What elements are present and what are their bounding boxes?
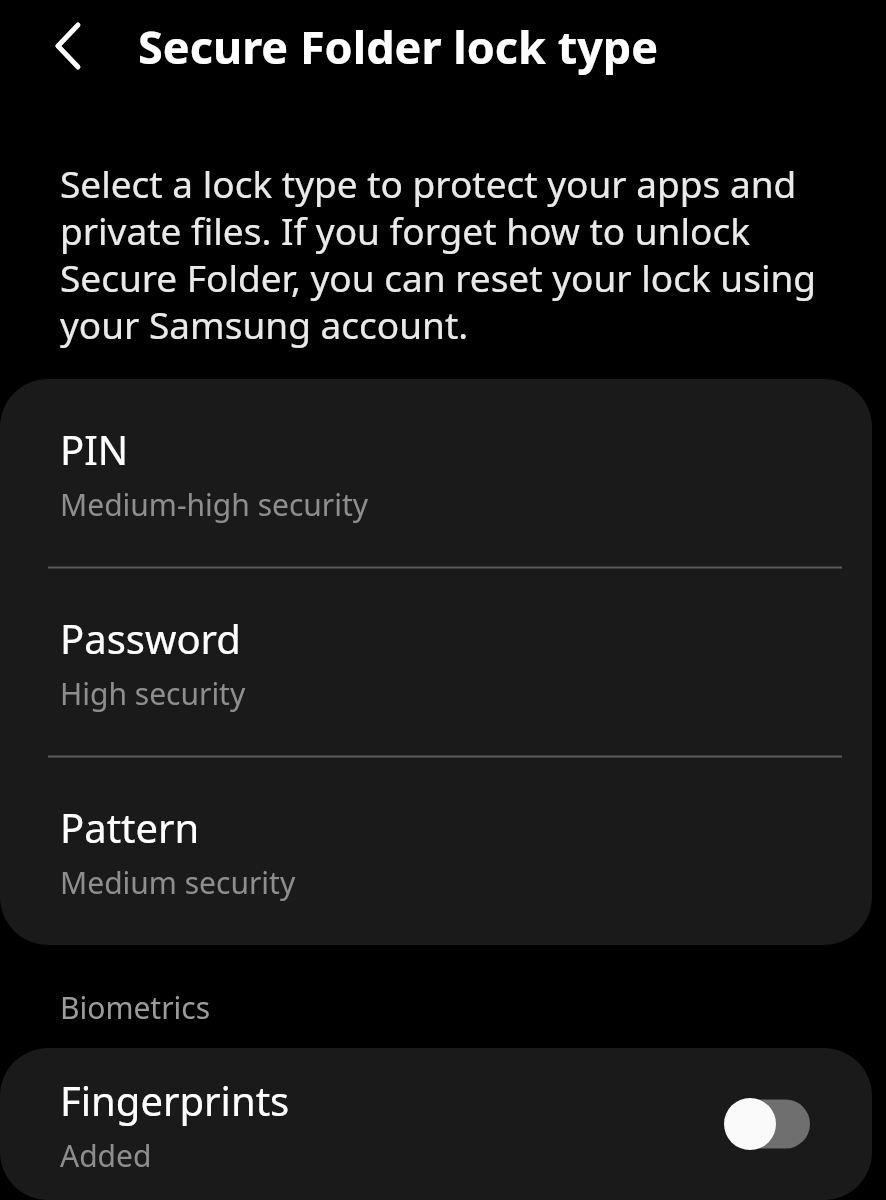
staticText: PIN <box>60 422 129 476</box>
button[interactable]: Pattern <box>0 757 872 945</box>
staticText: Password <box>60 611 241 665</box>
staticText: High security <box>60 673 246 714</box>
staticText: Medium security <box>60 862 296 903</box>
button[interactable]: PIN <box>0 379 872 567</box>
staticText: Pattern <box>60 800 200 854</box>
staticText: Added <box>60 1135 152 1176</box>
button[interactable]: Back <box>38 16 98 76</box>
staticText: Biometrics <box>60 987 211 1028</box>
button[interactable]: Fingerprints <box>0 1048 872 1200</box>
button[interactable]: Password <box>0 568 872 756</box>
staticText: Secure Folder lock type <box>138 16 659 77</box>
staticText: Select a lock type to protect your apps … <box>60 158 828 350</box>
staticText: Medium-high security <box>60 484 369 525</box>
staticText: Fingerprints <box>60 1073 290 1127</box>
button[interactable]: Fingerprints toggle <box>718 1089 818 1159</box>
